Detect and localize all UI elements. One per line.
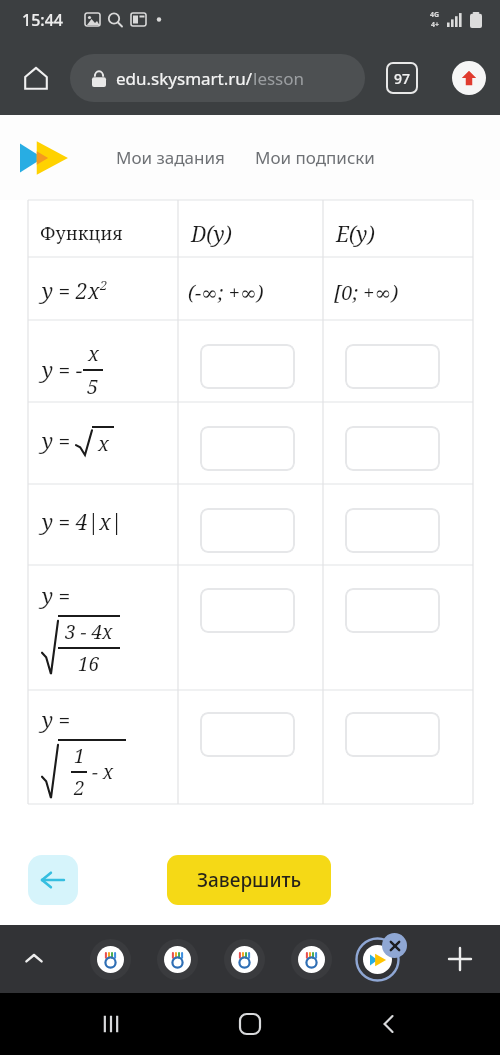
button[interactable]: Answer field <box>345 426 440 471</box>
button[interactable]: Home <box>227 1001 273 1047</box>
button[interactable]: Мои подписки <box>251 140 379 175</box>
staticText: x <box>88 340 99 367</box>
staticText: (−∞; +∞) <box>188 279 264 306</box>
staticText: y = <box>42 427 76 456</box>
staticText: 16 <box>78 651 100 677</box>
staticText: 2 <box>74 775 85 801</box>
button[interactable]: Back <box>28 855 78 905</box>
button[interactable]: Back <box>366 1001 412 1047</box>
staticText: 97 <box>394 69 411 88</box>
staticText: 1 <box>74 743 85 769</box>
button[interactable]: Answer field <box>345 344 440 389</box>
button[interactable]: Active tab <box>355 937 400 982</box>
button[interactable]: edu.skysmart.ru/ <box>70 54 365 102</box>
button[interactable]: Home <box>14 56 58 100</box>
button[interactable]: Answer field <box>200 508 295 553</box>
staticText: Мои задания <box>116 146 225 169</box>
staticText: y = <box>42 706 71 735</box>
staticText: Завершить <box>197 867 302 893</box>
staticText: 3 − 4x <box>65 619 113 645</box>
staticText: 15:44 <box>22 9 63 31</box>
button[interactable]: Answer field <box>200 588 295 633</box>
staticText: x <box>98 430 109 457</box>
staticText: 2 <box>100 276 108 294</box>
staticText: D(y) <box>191 220 232 249</box>
staticText: y = 2 <box>42 277 88 306</box>
button[interactable]: Tab 1 <box>90 939 131 980</box>
staticText: y = − <box>42 356 83 385</box>
staticText: lesson <box>253 67 305 90</box>
button[interactable]: Answer field <box>200 344 295 389</box>
button[interactable]: New tab <box>440 939 480 979</box>
button[interactable]: Завершить <box>167 855 331 905</box>
staticText: [0; +∞) <box>334 279 399 306</box>
staticText: Мои подписки <box>255 146 375 169</box>
button[interactable]: Tab 2 <box>157 939 198 980</box>
button[interactable]: Expand tabs <box>14 939 54 979</box>
button[interactable]: Tab 4 <box>291 939 332 980</box>
staticText: − x <box>87 759 114 785</box>
staticText: 5 <box>87 373 99 400</box>
staticText: 4G <box>430 10 440 20</box>
staticText: y = 4|x| <box>42 508 123 537</box>
button[interactable]: Answer field <box>345 508 440 553</box>
staticText: Функция <box>40 221 123 246</box>
button[interactable]: Tab 3 <box>224 939 265 980</box>
button[interactable]: Answer field <box>345 588 440 633</box>
button[interactable]: Recents <box>88 1001 134 1047</box>
button[interactable]: Close tab <box>382 933 407 958</box>
staticText: y = <box>42 582 71 611</box>
staticText: 4+ <box>431 20 440 30</box>
button[interactable]: Update <box>452 61 486 95</box>
staticText: E(y) <box>336 220 375 249</box>
button[interactable]: Tabs <box>386 62 418 94</box>
staticText: edu.skysmart.ru/ <box>116 67 253 90</box>
button[interactable]: Мои задания <box>112 140 229 175</box>
button[interactable]: Answer field <box>345 712 440 757</box>
button[interactable]: Answer field <box>200 426 295 471</box>
staticText: x <box>88 277 100 306</box>
button[interactable]: Skysmart <box>18 138 70 178</box>
button[interactable]: Answer field <box>200 712 295 757</box>
